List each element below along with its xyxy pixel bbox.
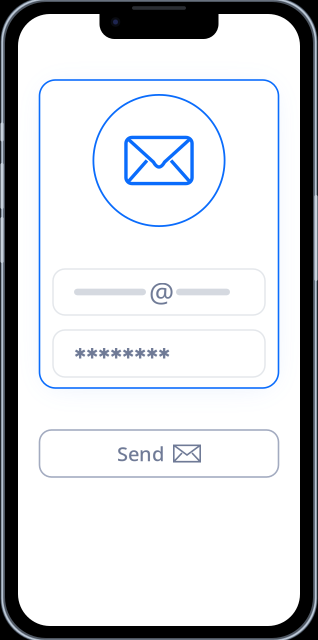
button[interactable]: Send: [39, 430, 278, 477]
staticText: ✱✱✱✱✱✱✱✱: [74, 345, 170, 362]
staticText: @: [149, 273, 174, 311]
button[interactable]: Email address: [53, 269, 265, 315]
button[interactable]: Password: [53, 330, 265, 377]
staticText: Send: [117, 440, 164, 467]
